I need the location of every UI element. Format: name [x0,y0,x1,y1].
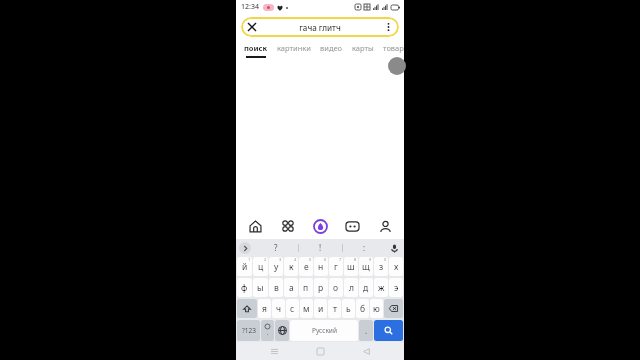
staticText: Русский [312,326,337,335]
staticText: 5 [309,257,312,262]
staticText: ж [378,282,385,294]
button[interactable]: ь [342,299,355,318]
button[interactable]: Русский [290,320,358,341]
button[interactable]: Change language [275,320,289,341]
staticText: ы [257,282,264,294]
staticText: . [365,325,368,336]
staticText: д [363,282,369,294]
button[interactable]: картинки [277,43,311,53]
staticText: х [394,261,399,273]
button[interactable]: карты [352,43,374,53]
button[interactable]: More options [382,21,394,33]
staticText: 0 [384,257,387,262]
button[interactable]: товар [383,43,404,53]
button[interactable]: Back [358,343,374,359]
staticText: м [303,303,310,315]
button[interactable]: н [314,257,328,276]
button[interactable]: Clear [241,17,399,37]
staticText: ф [241,282,248,294]
button[interactable]: и [314,299,327,318]
button[interactable]: л [344,278,358,297]
button[interactable]: о [329,278,343,297]
staticText: ч [276,303,282,315]
button[interactable]: р [314,278,328,297]
button[interactable]: ч [272,299,285,318]
button[interactable]: Voice input [388,242,400,254]
staticText: 2 [264,257,267,262]
button[interactable]: е [299,257,313,276]
button[interactable]: поиск [244,43,268,58]
button[interactable]: г [329,257,343,276]
button[interactable]: ж [374,278,388,297]
staticText: , [267,329,269,337]
staticText: картинки [277,43,311,53]
button[interactable]: Expand [239,242,251,254]
button[interactable]: ц [253,257,268,276]
button[interactable]: у [269,257,283,276]
button[interactable]: с [286,299,299,318]
staticText: г [334,261,338,273]
staticText: : [363,242,366,253]
staticText: 12:34 [241,2,259,12]
button[interactable]: Services [275,213,301,239]
button[interactable]: Clear [246,21,258,33]
staticText: а [289,282,294,294]
staticText: 3 [279,257,282,262]
staticText: 6 [324,257,327,262]
staticText: поиск [244,43,268,53]
button[interactable]: : [343,242,386,253]
button[interactable]: я [258,299,271,318]
staticText: ?123 [242,326,256,335]
staticText: п [303,282,309,294]
button[interactable]: Account [388,57,406,75]
button[interactable]: ш [344,257,358,276]
button[interactable]: Home [312,343,328,359]
button[interactable]: п [299,278,313,297]
button[interactable]: Search [374,320,403,341]
button[interactable]: щ [359,257,373,276]
staticText: щ [362,261,370,273]
staticText: 1 [248,257,251,262]
staticText: р [318,282,324,294]
button[interactable]: а [284,278,298,297]
staticText: в [274,282,279,294]
button[interactable]: ? [254,242,298,253]
staticText: ц [258,261,264,273]
button[interactable]: з [374,257,388,276]
staticText: ! [319,242,322,253]
button[interactable]: ы [253,278,268,297]
staticText: й [242,261,248,273]
button[interactable]: м [300,299,313,318]
button[interactable]: ! [299,242,342,253]
button[interactable]: х [389,257,403,276]
button[interactable]: э [389,278,403,297]
staticText: ? [274,242,278,253]
staticText: товар [383,43,404,53]
button[interactable]: к [284,257,298,276]
button[interactable]: й [237,257,252,276]
button[interactable]: видео [320,43,343,53]
button[interactable]: д [359,278,373,297]
button[interactable]: ю [370,299,383,318]
staticText: ш [347,261,355,273]
button[interactable]: Alice [307,213,333,239]
button[interactable]: . [359,320,373,341]
button[interactable]: ?123 [237,320,260,341]
button[interactable]: Backspace [384,299,403,318]
staticText: о [333,282,339,294]
staticText: и [318,303,324,315]
button[interactable]: Profile [372,213,398,239]
staticText: карты [352,43,374,53]
button[interactable]: б [356,299,369,318]
button[interactable]: Emoji and comma [261,320,274,341]
button[interactable]: Recents [266,343,282,359]
button[interactable]: ф [237,278,252,297]
staticText: б [360,303,366,315]
button[interactable]: т [328,299,341,318]
button[interactable]: в [269,278,283,297]
button[interactable]: Home [242,213,268,239]
staticText: 9 [369,257,372,262]
staticText: н [318,261,324,273]
button[interactable]: Messages [339,213,365,239]
button[interactable]: Shift [237,299,257,318]
